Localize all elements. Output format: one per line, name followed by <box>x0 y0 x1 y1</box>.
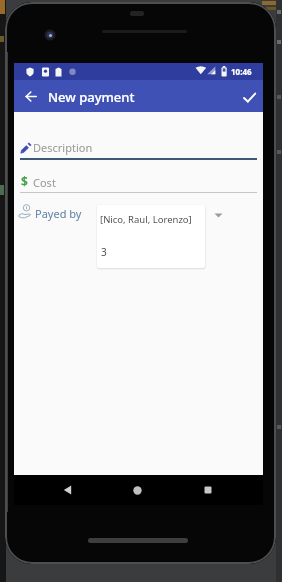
staticText: Payed by <box>35 206 82 221</box>
staticText: Cost <box>33 175 56 190</box>
staticText: Description <box>33 140 93 155</box>
button[interactable] <box>55 478 79 502</box>
staticText: [Nico, Raul, Lorenzo] <box>100 213 192 226</box>
button[interactable]: Description <box>14 136 263 160</box>
button[interactable] <box>196 478 220 502</box>
button[interactable]: $ <box>14 170 263 194</box>
button[interactable] <box>238 80 263 112</box>
button[interactable] <box>125 478 149 502</box>
button[interactable] <box>17 80 45 112</box>
button[interactable]: [Nico, Raul, Lorenzo] <box>97 205 205 268</box>
staticText: $ <box>21 173 28 189</box>
staticText: New payment <box>48 88 135 106</box>
staticText: 10:46 <box>231 66 252 77</box>
staticText: 3 <box>101 245 107 259</box>
